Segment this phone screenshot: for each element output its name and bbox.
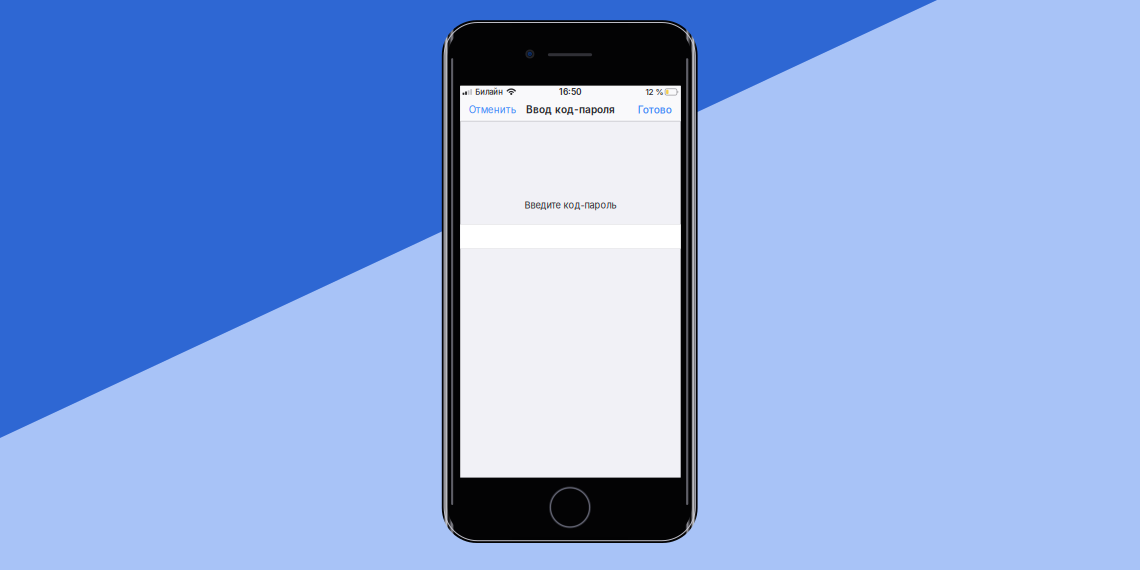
staticText: Введите код-пароль [524,200,616,211]
staticText: Ввод код-пароля [526,104,615,116]
staticText: Отменить [469,104,516,116]
staticText: 16:50 [559,87,582,97]
staticText: Готово [638,104,672,116]
button[interactable]: Отменить [468,98,517,121]
button[interactable]: Готово [637,98,673,121]
staticText: Билайн [475,87,503,97]
staticText: 12 % [645,87,663,97]
